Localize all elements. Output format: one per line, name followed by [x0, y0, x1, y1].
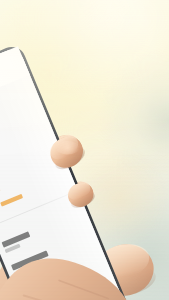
button[interactable]: Hand holding phone with banking app: [0, 0, 169, 300]
